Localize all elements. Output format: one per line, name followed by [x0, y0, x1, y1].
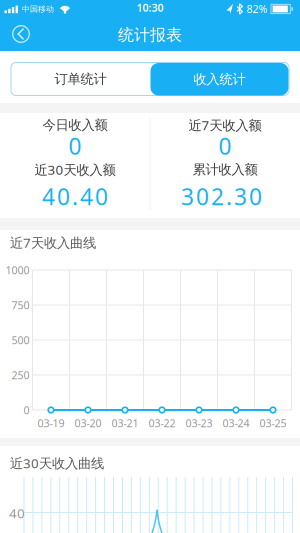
- button[interactable]: Back: [4, 17, 38, 51]
- staticText: 500: [11, 333, 29, 347]
- staticText: 0: [218, 131, 231, 161]
- staticText: 近30天收入额: [34, 161, 115, 178]
- staticText: 40: [9, 504, 25, 522]
- staticText: 近7天收入曲线: [10, 234, 96, 251]
- staticText: 收入统计: [193, 71, 245, 87]
- staticText: 订单统计: [54, 71, 106, 87]
- staticText: 今日收入额: [42, 117, 107, 133]
- button[interactable]: 订单统计: [11, 62, 150, 96]
- staticText: 03-20: [74, 416, 101, 430]
- staticText: 250: [11, 368, 29, 382]
- staticText: 0: [68, 131, 81, 161]
- staticText: 3 0 2 . 3 0: [181, 181, 262, 211]
- staticText: 82%: [246, 2, 267, 16]
- staticText: 近30天收入曲线: [10, 454, 104, 472]
- staticText: 03-22: [148, 416, 175, 430]
- staticText: 中国移动: [22, 4, 54, 14]
- staticText: 10:30: [136, 0, 163, 15]
- staticText: 1000: [5, 263, 29, 277]
- staticText: 750: [11, 298, 29, 312]
- staticText: 03-24: [222, 416, 249, 430]
- staticText: 累计收入额: [192, 161, 257, 178]
- staticText: 03-21: [111, 416, 138, 430]
- staticText: 近7天收入额: [188, 116, 261, 134]
- button[interactable]: 收入统计: [150, 63, 288, 95]
- staticText: 4 0 . 4 0: [42, 181, 108, 211]
- staticText: 统计报表: [118, 25, 182, 45]
- staticText: 03-23: [185, 416, 212, 430]
- staticText: 03-19: [37, 416, 64, 430]
- staticText: 03-25: [259, 416, 286, 430]
- staticText: 0: [23, 403, 29, 417]
